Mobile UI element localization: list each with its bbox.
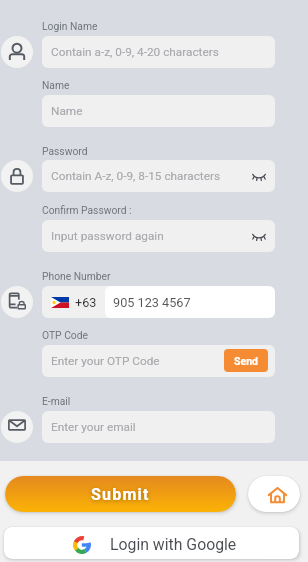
staticText: Password — [42, 145, 88, 157]
staticText: +63 — [75, 295, 97, 310]
button[interactable]: Enter your email — [42, 411, 275, 443]
button[interactable]: Send — [224, 349, 268, 372]
staticText: Input password again — [51, 229, 164, 243]
staticText: Login with Google — [110, 535, 237, 554]
button[interactable]: Login with Google — [4, 527, 299, 559]
button[interactable]: Contain a-z, 0-9, 4-20 characters — [42, 36, 275, 68]
button[interactable]: Contain A-z, 0-9, 8-15 characters — [42, 160, 275, 192]
button[interactable]: Toggle password visibility — [252, 229, 266, 243]
button[interactable]: Name — [42, 95, 275, 127]
staticText: 905 123 4567 — [113, 295, 191, 310]
button[interactable]: Home — [248, 476, 300, 512]
staticText: E-mail — [42, 395, 71, 407]
staticText: Submit — [91, 485, 150, 504]
button[interactable]: Toggle password visibility — [252, 169, 266, 183]
staticText: Confirm Password : — [42, 204, 132, 216]
staticText: Phone Number — [42, 270, 111, 282]
button[interactable]: Submit — [5, 476, 236, 512]
staticText: OTP Code — [42, 329, 88, 341]
staticText: Name — [42, 79, 70, 91]
staticText: Login Name — [42, 20, 98, 32]
button[interactable]: +63 — [42, 286, 105, 318]
staticText: Send — [234, 355, 258, 367]
button[interactable]: Enter your OTP Code — [42, 345, 275, 377]
staticText: Enter your email — [51, 420, 136, 434]
button[interactable]: Input password again — [42, 220, 275, 252]
staticText: Enter your OTP Code — [51, 354, 160, 368]
staticText: Contain A-z, 0-9, 8-15 characters — [51, 169, 221, 183]
staticText: Contain a-z, 0-9, 4-20 characters — [51, 45, 219, 59]
staticText: Name — [51, 104, 83, 118]
